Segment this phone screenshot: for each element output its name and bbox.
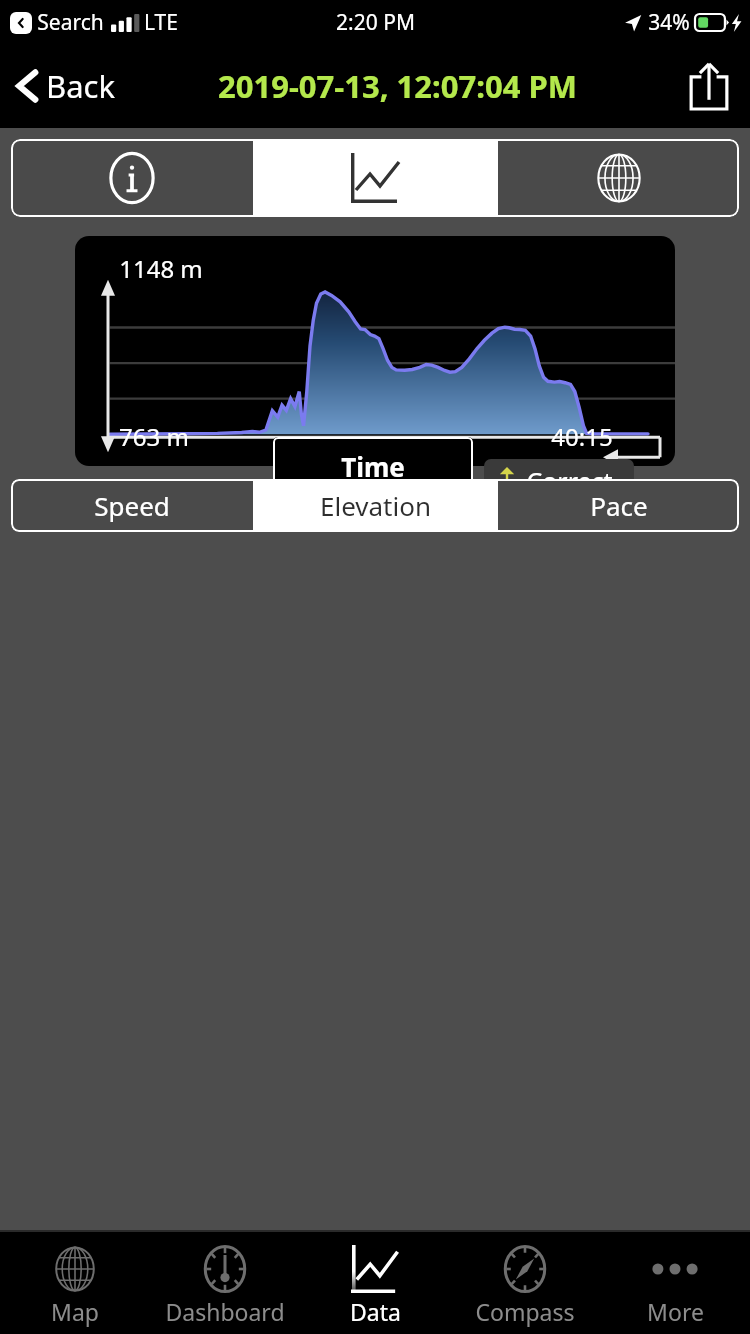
button[interactable]: Map (498, 139, 739, 217)
button[interactable]: Dashboard (150, 1232, 300, 1334)
staticText: 2019-07-13, 12:07:04 PM (218, 65, 577, 107)
staticText: LTE (144, 8, 178, 37)
button[interactable]: Elevation (255, 479, 496, 532)
button[interactable]: Data (300, 1232, 450, 1334)
button[interactable]: Correct (484, 459, 634, 503)
staticText: Speed (94, 488, 170, 523)
staticText: 34% (648, 8, 690, 37)
staticText: Search (37, 8, 104, 37)
staticText: 40:15 (551, 420, 613, 453)
button[interactable]: Share (668, 49, 750, 123)
button[interactable]: More (600, 1232, 750, 1334)
staticText: Time (341, 449, 405, 484)
staticText: More (647, 1296, 704, 1327)
staticText: Data (350, 1296, 401, 1327)
staticText: 1148 m (119, 252, 203, 285)
button[interactable]: Back (0, 65, 123, 107)
button[interactable]: Info (11, 139, 253, 217)
staticText: Dashboard (165, 1296, 285, 1327)
button[interactable]: Chart (255, 139, 496, 217)
button[interactable]: Pace (498, 479, 739, 532)
button[interactable]: Time (273, 437, 473, 495)
staticText: Map (51, 1296, 99, 1327)
button[interactable]: Compass (450, 1232, 600, 1334)
staticText: 763 m (119, 420, 189, 453)
button[interactable]: Speed (11, 479, 253, 532)
button[interactable]: Map (0, 1232, 150, 1334)
staticText: Correct (526, 464, 613, 498)
staticText: 2:20 PM (336, 8, 415, 37)
staticText: Back (46, 65, 115, 107)
staticText: Elevation (320, 488, 431, 523)
staticText: Compass (475, 1296, 575, 1327)
staticText: Pace (590, 488, 648, 523)
